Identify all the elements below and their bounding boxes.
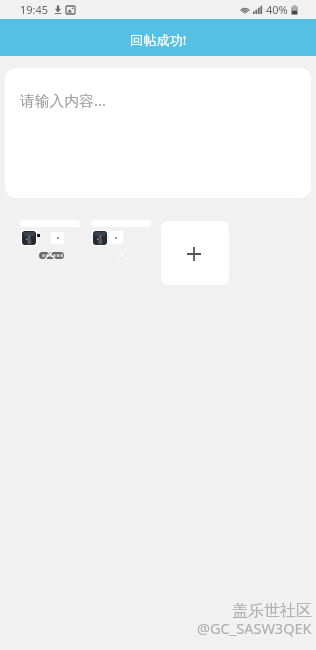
staticText: 请输入内容... — [20, 90, 106, 110]
button[interactable]: 请输入内容... — [5, 68, 311, 198]
staticText: @GC_SASW3QEK — [197, 618, 312, 638]
staticText: 19:45 — [20, 2, 49, 17]
button[interactable]: Add image — [161, 221, 229, 285]
staticText: 回帖成功! — [130, 31, 187, 49]
staticText: 40% — [266, 2, 288, 17]
button[interactable]: Attached image — [20, 220, 82, 265]
staticText: 盖乐世社区 — [232, 601, 312, 621]
button[interactable]: Attached image — [91, 220, 153, 265]
